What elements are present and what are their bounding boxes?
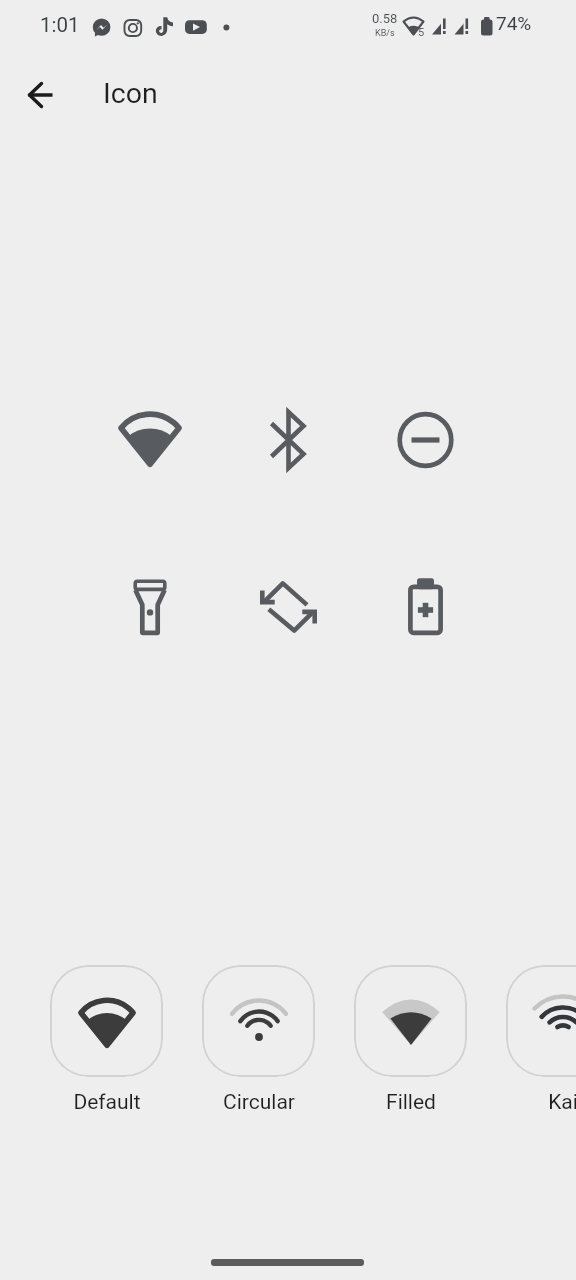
button[interactable]: Filled [354,965,467,1115]
staticText: Filled [386,1090,436,1115]
staticText: Circular [223,1090,295,1115]
staticText: 1:01 [40,13,80,37]
staticText: 0.58 [372,11,398,26]
button[interactable]: Default [50,965,163,1115]
staticText: Icon [103,77,158,110]
button[interactable]: Kai [506,965,576,1115]
button[interactable]: Circular [202,965,315,1115]
staticText: 74% [496,12,532,34]
staticText: 5 [418,26,425,39]
staticText: KB/s [375,28,395,39]
staticText: Kai [548,1090,576,1115]
button[interactable]: Back [17,71,65,119]
staticText: Default [73,1090,141,1115]
